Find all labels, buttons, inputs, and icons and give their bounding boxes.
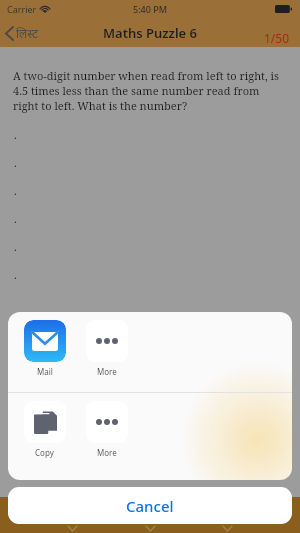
button[interactable]: More	[82, 401, 131, 458]
staticText: Cancel	[126, 496, 174, 516]
other: More	[86, 320, 128, 362]
button[interactable]: Cancel	[8, 487, 292, 524]
staticText: More	[97, 366, 117, 377]
other: Copy	[24, 401, 66, 443]
staticText: .	[14, 127, 17, 142]
staticText: .	[14, 239, 17, 254]
staticText: Mail	[37, 366, 53, 377]
staticText: Copy	[35, 447, 54, 458]
other: Back	[6, 27, 13, 40]
staticText: .	[14, 211, 17, 226]
staticText: A two-digit number when read from left t…	[13, 68, 287, 113]
other: Mail	[24, 320, 66, 362]
staticText: 5:40 PM	[133, 3, 167, 15]
staticText: .	[14, 155, 17, 170]
staticText: Maths Puzzle 6	[103, 24, 198, 42]
button[interactable]: Copy	[20, 401, 69, 458]
staticText: 1/50	[264, 30, 290, 46]
staticText: .	[14, 183, 17, 198]
staticText: Carrier	[7, 3, 37, 15]
button[interactable]: Mail	[20, 320, 69, 377]
staticText: More	[97, 447, 117, 458]
staticText: .	[14, 267, 17, 282]
staticText: लिस्ट	[16, 25, 38, 41]
button[interactable]: More	[82, 320, 131, 377]
button[interactable]: Back	[0, 21, 46, 45]
other: More	[86, 401, 128, 443]
